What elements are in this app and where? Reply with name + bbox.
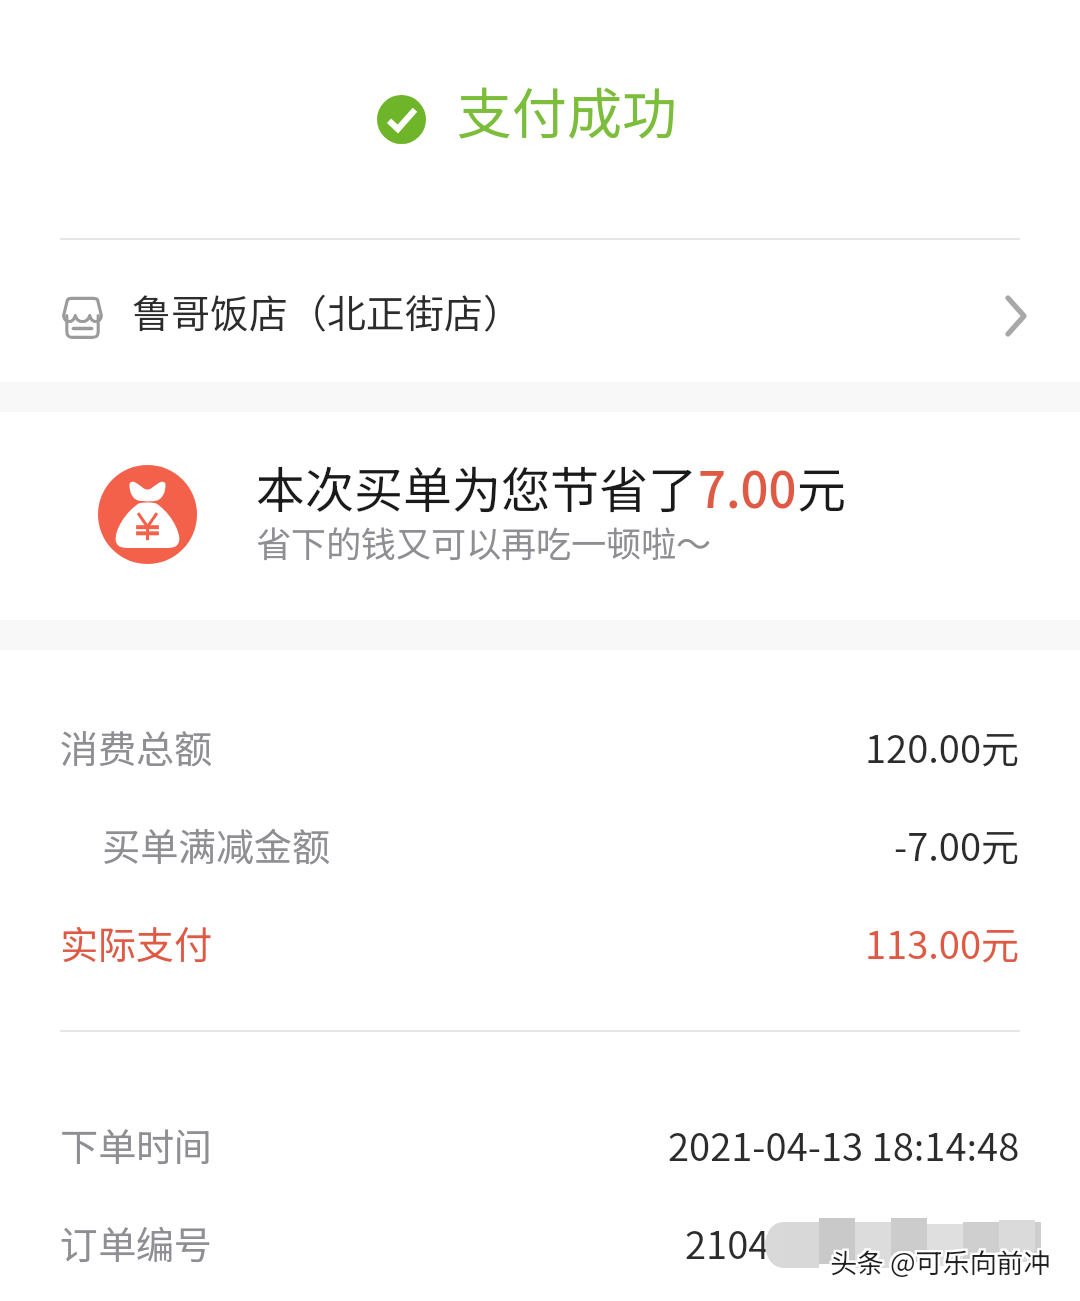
button[interactable]: 本次买单为您节省了 xyxy=(0,412,1080,620)
other: Store details xyxy=(1002,294,1025,338)
staticText: -7.00元 xyxy=(894,817,1020,872)
staticText: 头条 @可乐向前冲 xyxy=(832,1240,1053,1279)
staticText: 头条 @可乐向前冲 xyxy=(830,1244,1051,1283)
staticText: 头条 @可乐向前冲 xyxy=(832,1244,1053,1283)
staticText: 鲁哥饭店（北正街店） xyxy=(132,283,523,339)
staticText: 头条 @可乐向前冲 xyxy=(830,1242,1051,1281)
staticText: 省下的钱又可以再吃一顿啦～ xyxy=(256,516,712,567)
staticText: 头条 @可乐向前冲 xyxy=(828,1242,1049,1281)
staticText: 头条 @可乐向前冲 xyxy=(830,1240,1051,1279)
staticText: 下单时间 xyxy=(60,1117,213,1172)
staticText: 2104 xyxy=(685,1215,770,1270)
staticText: 实际支付 xyxy=(60,915,213,970)
staticText: 113.00元 xyxy=(865,915,1020,970)
button[interactable]: 鲁哥饭店（北正街店） xyxy=(0,240,1080,382)
staticText: 2021-04-13 18:14:48 xyxy=(668,1117,1020,1172)
staticText: 头条 @可乐向前冲 xyxy=(828,1240,1049,1279)
staticText: 消费总额 xyxy=(60,719,213,774)
staticText: 120.00元 xyxy=(865,719,1020,774)
staticText: 支付成功 xyxy=(457,70,678,150)
staticText: 元 xyxy=(797,451,847,522)
staticText: 7.00 xyxy=(698,451,797,522)
staticText: 头条 @可乐向前冲 xyxy=(832,1242,1053,1281)
staticText: 头条 @可乐向前冲 xyxy=(828,1244,1049,1283)
staticText: 订单编号 xyxy=(60,1215,213,1270)
staticText: 本次买单为您节省了 xyxy=(256,451,698,522)
staticText: 买单满减金额 xyxy=(102,817,331,872)
